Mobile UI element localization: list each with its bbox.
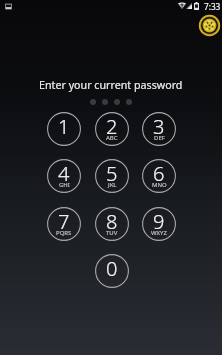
staticText: 6 (153, 160, 165, 187)
staticText: WXYZ (151, 229, 167, 237)
button[interactable]: 9 (135, 200, 183, 248)
staticText: MNO (152, 181, 167, 189)
button[interactable]: 4 (40, 152, 88, 200)
staticText: TUV (106, 229, 118, 237)
staticText: JKL (108, 181, 117, 189)
button[interactable]: 3 (135, 105, 183, 153)
staticText: 2 (106, 113, 118, 140)
staticText: 9 (153, 208, 165, 235)
staticText: 3 (153, 113, 165, 140)
button[interactable]: 1 (40, 105, 88, 153)
button[interactable]: 8 (88, 200, 136, 248)
button[interactable]: 0 (88, 247, 136, 295)
button[interactable]: 6 (135, 152, 183, 200)
staticText: PQRS (56, 229, 72, 237)
staticText: 4 (58, 160, 70, 187)
staticText: GHI (59, 181, 70, 189)
button[interactable]: 5 (88, 152, 136, 200)
staticText: ABC (106, 134, 118, 142)
button[interactable]: 2 (88, 105, 136, 153)
staticText: 7:33 (204, 1, 221, 12)
staticText: 7 (58, 208, 70, 235)
staticText: 8 (106, 208, 118, 235)
staticText: DEF (154, 134, 165, 142)
button[interactable]: 7 (40, 200, 88, 248)
button[interactable]: Account badge (199, 15, 220, 36)
staticText: 5 (106, 160, 118, 187)
staticText: 0 (106, 255, 118, 282)
staticText: Enter your current password (39, 78, 183, 93)
staticText: 1 (58, 113, 70, 140)
